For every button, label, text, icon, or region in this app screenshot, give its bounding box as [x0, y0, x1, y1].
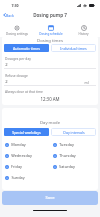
staticText: Dosages per day [5, 56, 31, 60]
staticText: Thursday [59, 153, 76, 158]
staticText: Day mode [2, 120, 98, 126]
staticText: Back [6, 13, 14, 18]
button[interactable]: Refuse dosage [2, 73, 98, 87]
button[interactable]: Thursday [50, 150, 98, 161]
staticText: 2 [5, 62, 8, 68]
button[interactable]: Dosages per day [2, 56, 98, 70]
staticText: 2 [5, 79, 8, 85]
staticText: Sunday [11, 175, 25, 180]
button[interactable]: Individual times [51, 44, 96, 52]
staticText: Individual times [60, 46, 87, 51]
staticText: Saturday [59, 164, 75, 169]
staticText: Dosing pump 7 [33, 12, 67, 18]
staticText: Dosing settings [6, 32, 28, 36]
staticText: Wednesday [11, 153, 32, 158]
button[interactable]: Wednesday [2, 150, 50, 161]
staticText: Save [45, 195, 55, 201]
staticText: Dosing times [2, 38, 98, 44]
button[interactable]: Day intervals [51, 128, 96, 136]
button[interactable]: Friday [2, 161, 50, 172]
button[interactable]: Monday [2, 139, 50, 150]
button[interactable]: Sunday [2, 172, 50, 183]
staticText: Refuse dosage [5, 73, 28, 77]
staticText: Always dose at that time [5, 89, 43, 93]
staticText: Monday [11, 142, 26, 147]
staticText: 12:30 AM [40, 96, 60, 102]
staticText: Automatic times [13, 46, 40, 51]
staticText: Tuesday [59, 142, 74, 147]
staticText: History [78, 32, 89, 36]
staticText: Day intervals [63, 130, 85, 135]
staticText: Special weekdays [12, 130, 41, 135]
staticText: ml [84, 80, 89, 85]
staticText: 7:30 [11, 3, 19, 8]
button[interactable]: Dosing schedule [34, 23, 67, 37]
button[interactable]: History [67, 23, 100, 37]
button[interactable]: Tuesday [50, 139, 98, 150]
staticText: Dosing schedule [39, 32, 63, 36]
button[interactable]: Saturday [50, 161, 98, 172]
button[interactable]: Always dose at that time [2, 89, 98, 104]
button[interactable]: Special weekdays [4, 128, 49, 136]
button[interactable]: Dosing settings [0, 23, 34, 37]
staticText: Friday [11, 164, 22, 169]
button[interactable]: Back [0, 10, 16, 20]
button[interactable]: Save [2, 191, 98, 205]
button[interactable]: Automatic times [4, 44, 49, 52]
